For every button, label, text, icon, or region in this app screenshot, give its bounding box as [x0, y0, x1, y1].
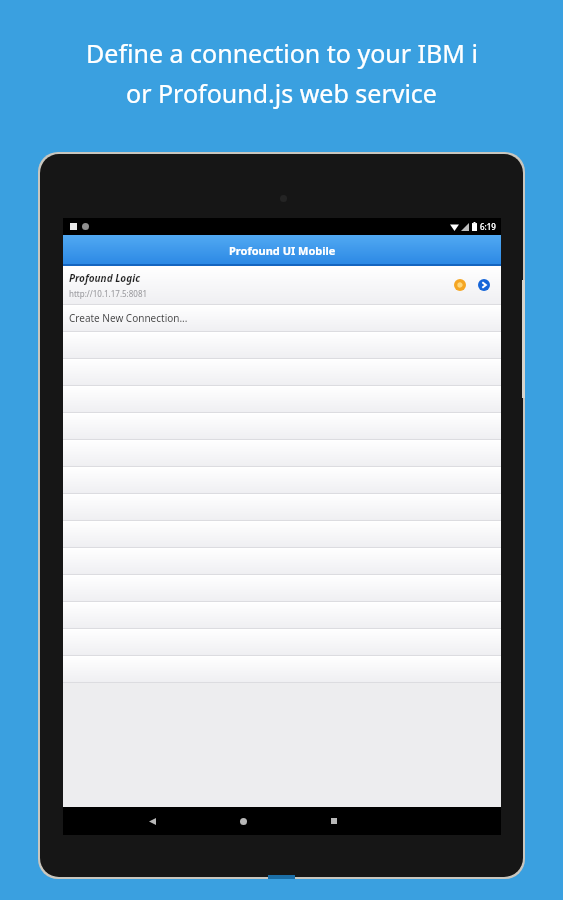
staticText: Profound Logic — [69, 271, 140, 285]
staticText: Create New Connection... — [69, 311, 188, 325]
button[interactable]: Open connection — [475, 276, 493, 294]
button[interactable]: Home — [233, 811, 253, 831]
staticText: 6:19 — [480, 221, 496, 232]
staticText: Profound UI Mobile — [229, 243, 336, 258]
button[interactable]: Create New Connection... — [63, 305, 501, 331]
button[interactable]: Recent apps — [324, 811, 344, 831]
staticText: http://10.1.17.5:8081 — [69, 288, 148, 299]
button[interactable]: Profound Logic — [63, 266, 501, 304]
staticText: Define a connection to your IBM i — [86, 36, 478, 70]
button[interactable]: Edit connection settings — [451, 276, 469, 294]
staticText: or Profound.js web service — [126, 76, 437, 110]
button[interactable]: Back — [142, 811, 162, 831]
